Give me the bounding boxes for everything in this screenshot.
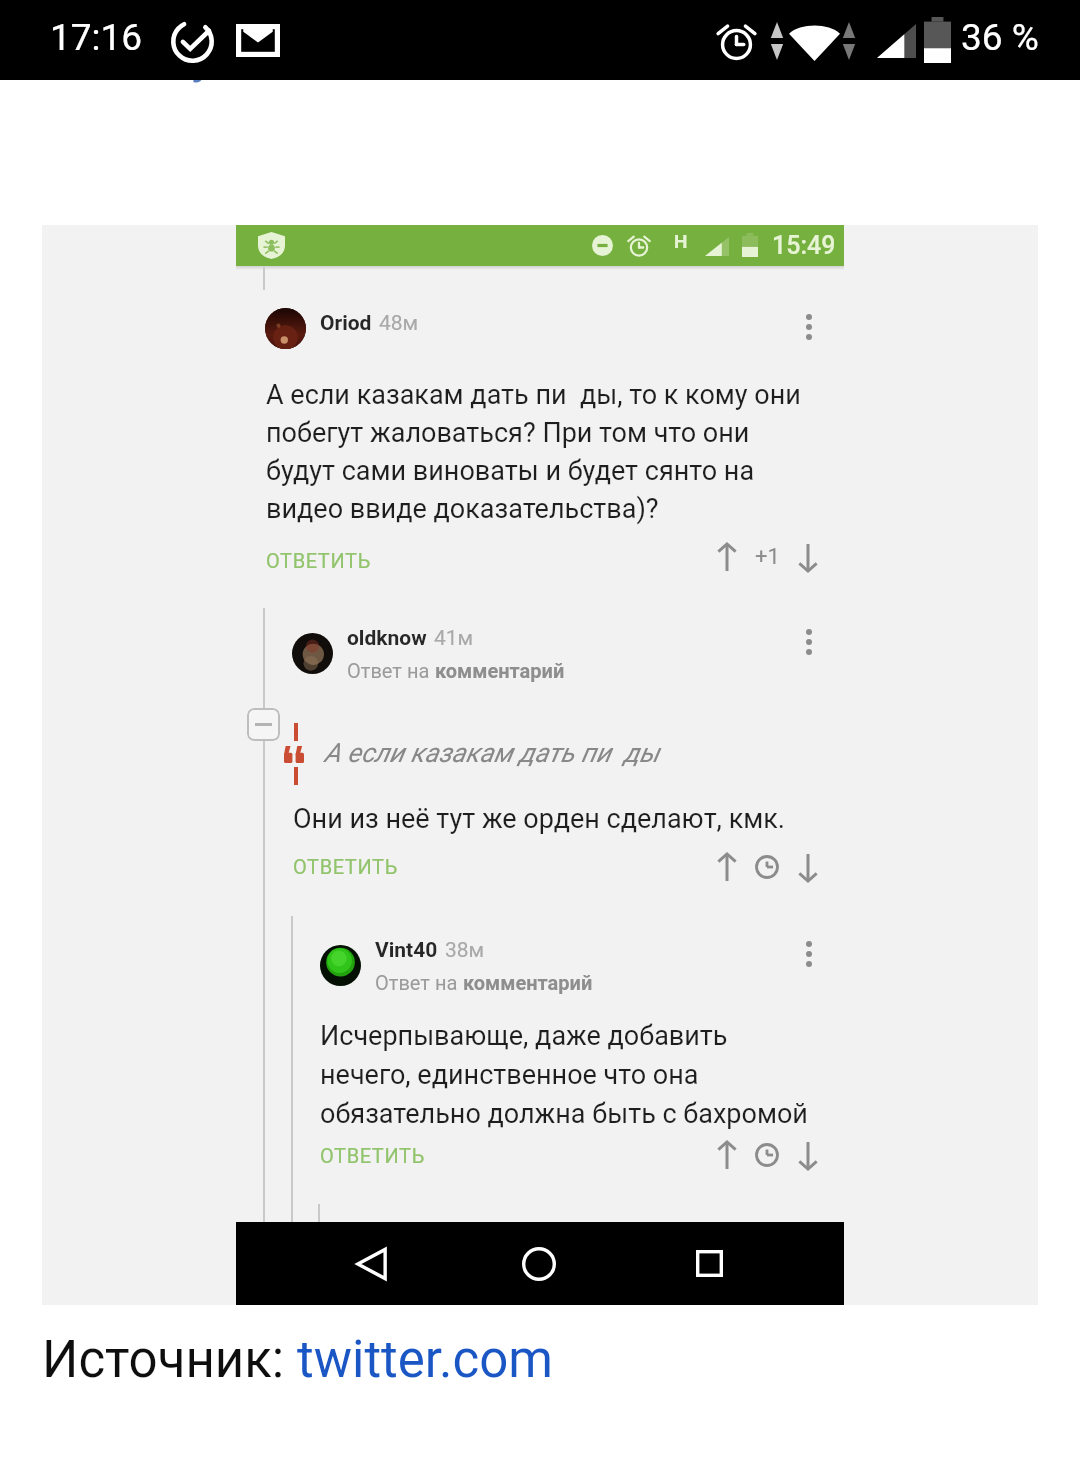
button[interactable]: Downvote <box>790 539 826 575</box>
staticText: комментарий <box>463 971 593 994</box>
staticText: А если казакам дать пи ды <box>324 737 660 768</box>
staticText: oldknow <box>347 626 427 651</box>
button[interactable]: Downvote <box>790 1137 826 1173</box>
staticText: Vint40 <box>375 938 438 963</box>
staticText: 38м <box>445 938 485 963</box>
staticText: twitter.com <box>297 1330 553 1390</box>
staticText: 48м <box>379 311 419 336</box>
button[interactable]: ОТВЕТИТЬ <box>320 1144 425 1167</box>
staticText: Исчерпывающе, даже добавить нечего, един… <box>320 1020 820 1129</box>
staticText: ОТВЕТИТЬ <box>266 549 371 572</box>
staticText: Oriod <box>320 311 372 336</box>
button[interactable]: More options <box>792 625 826 659</box>
staticText: Пикабушники подсказали, что это твит <box>42 24 982 84</box>
staticText: 15:49 <box>772 231 836 260</box>
button[interactable]: Recents <box>680 1240 738 1287</box>
button[interactable]: Downvote <box>790 849 826 885</box>
button[interactable]: ОТВЕТИТЬ <box>293 855 398 878</box>
button[interactable]: More options <box>792 937 826 971</box>
button[interactable]: Upvote <box>709 849 745 885</box>
button[interactable]: Home <box>510 1240 568 1287</box>
button[interactable]: twitter.com <box>297 1330 553 1390</box>
staticText: 17:16 <box>50 16 143 59</box>
staticText: Они из неё тут же орден сделают, кмк. <box>293 803 785 835</box>
button[interactable]: Upvote <box>709 539 745 575</box>
staticText: А если казакам дать пи ды, то к кому они… <box>266 379 811 525</box>
button[interactable]: More options <box>792 310 826 344</box>
button[interactable]: Upvote <box>709 1137 745 1173</box>
staticText: H <box>674 230 688 252</box>
staticText: ОТВЕТИТЬ <box>293 855 398 878</box>
staticText: ОТВЕТИТЬ <box>320 1144 425 1167</box>
staticText: +1 <box>755 544 780 570</box>
button[interactable]: ОТВЕТИТЬ <box>266 549 371 572</box>
staticText: комментарий <box>435 659 565 682</box>
staticText: Ответ на <box>375 971 463 994</box>
button[interactable]: Collapse thread <box>247 708 280 741</box>
button[interactable]: Back <box>342 1240 400 1287</box>
staticText: 41м <box>434 626 474 651</box>
staticText: Источник: <box>42 1330 297 1390</box>
staticText: 36 % <box>961 16 1039 59</box>
staticText: Ответ на <box>347 659 435 682</box>
